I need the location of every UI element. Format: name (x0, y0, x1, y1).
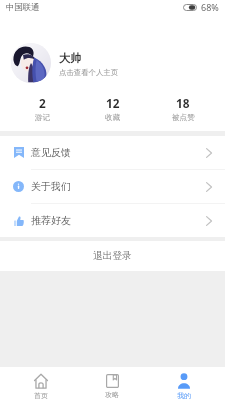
button[interactable]: Profile (148, 368, 220, 400)
staticText: 2 (39, 95, 46, 111)
button[interactable]: 2 (7, 98, 78, 126)
staticText: 68% (201, 1, 219, 13)
staticText: 退出登录 (93, 250, 132, 262)
staticText: 点击查看个人主页 (59, 68, 119, 77)
staticText: 关于我们 (31, 180, 71, 193)
button[interactable]: 退出登录 (0, 241, 225, 271)
staticText: 意见反馈 (31, 146, 71, 159)
button[interactable]: 12 (78, 98, 148, 126)
button[interactable]: 18 (148, 98, 218, 126)
staticText: 攻略 (105, 390, 119, 399)
staticText: 18 (176, 95, 190, 111)
staticText: 我的 (177, 391, 191, 400)
button[interactable]: 意见反馈 (0, 136, 225, 169)
button[interactable]: Home (5, 368, 76, 400)
button[interactable]: 推荐好友 (0, 204, 225, 237)
staticText: 中国联通 (6, 2, 40, 13)
staticText: 首页 (34, 391, 48, 400)
button[interactable]: 大帅 (0, 25, 225, 92)
staticText: 推荐好友 (31, 214, 71, 227)
staticText: 游记 (35, 113, 51, 123)
staticText: 被点赞 (172, 113, 195, 123)
staticText: 12 (106, 95, 120, 111)
staticText: 收藏 (105, 113, 121, 123)
staticText: 大帅 (59, 51, 82, 65)
button[interactable]: Guides (76, 369, 148, 399)
button[interactable]: 关于我们 (0, 170, 225, 203)
